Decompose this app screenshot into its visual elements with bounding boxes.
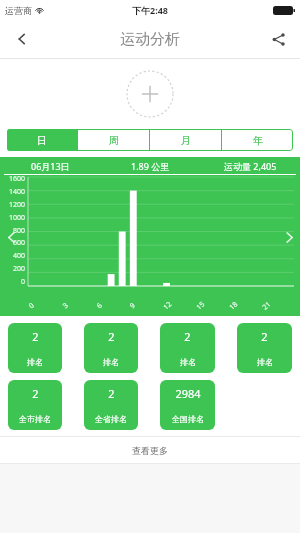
staticText: 日 <box>37 134 47 147</box>
button[interactable]: 2 <box>8 380 62 430</box>
staticText: 400 <box>13 251 26 261</box>
staticText: 全省排名 <box>95 414 127 424</box>
button[interactable]: 日 <box>7 129 77 151</box>
button[interactable]: Previous day <box>0 220 22 254</box>
button[interactable]: 2 <box>84 323 138 373</box>
staticText: 全国排名 <box>172 414 204 424</box>
staticText: 1200 <box>9 200 26 210</box>
staticText: 1.89 公里 <box>131 160 170 172</box>
staticText: 排名 <box>27 357 43 367</box>
button[interactable]: 周 <box>78 129 149 151</box>
staticText: 查看更多 <box>132 445 168 456</box>
staticText: 月 <box>181 134 191 147</box>
staticText: 06月13日 <box>31 160 70 172</box>
staticText: 2 <box>184 329 191 344</box>
button[interactable]: 月 <box>150 129 221 151</box>
button[interactable]: Next day <box>278 220 300 254</box>
button[interactable]: 查看更多 <box>0 437 300 463</box>
staticText: 年 <box>253 134 263 147</box>
button[interactable]: 2 <box>84 380 138 430</box>
button[interactable]: 2 <box>237 323 292 373</box>
button[interactable]: Add <box>126 70 174 118</box>
staticText: 全市排名 <box>19 414 51 424</box>
staticText: 3 <box>61 300 71 311</box>
button[interactable]: 年 <box>222 129 293 151</box>
staticText: 2984 <box>175 386 201 401</box>
staticText: 600 <box>13 238 26 248</box>
staticText: 周 <box>109 134 119 147</box>
staticText: 运动量 2,405 <box>224 160 277 172</box>
staticText: 1000 <box>9 213 26 223</box>
staticText: 2 <box>108 329 115 344</box>
staticText: 排名 <box>180 357 196 367</box>
staticText: 2 <box>32 329 39 344</box>
staticText: 18 <box>227 299 241 312</box>
staticText: 0 <box>21 277 26 287</box>
staticText: 21 <box>260 299 274 312</box>
staticText: 2 <box>261 329 268 344</box>
staticText: 15 <box>194 299 208 312</box>
staticText: 9 <box>128 300 138 311</box>
staticText: 12 <box>161 299 175 312</box>
staticText: 排名 <box>103 357 119 367</box>
staticText: 2 <box>108 386 115 401</box>
button[interactable]: Share <box>256 20 300 58</box>
staticText: 下午2:48 <box>132 4 168 16</box>
staticText: 运动分析 <box>120 30 180 49</box>
staticText: 1600 <box>9 174 26 184</box>
button[interactable]: 2 <box>8 323 62 373</box>
staticText: 6 <box>95 300 105 311</box>
staticText: 800 <box>13 226 26 236</box>
staticText: 200 <box>13 264 26 274</box>
staticText: 0 <box>27 300 37 311</box>
button[interactable]: 2984 <box>160 380 215 430</box>
staticText: 运营商 <box>5 5 32 16</box>
staticText: 1400 <box>9 187 26 197</box>
staticText: 2 <box>32 386 39 401</box>
button[interactable]: 2 <box>160 323 215 373</box>
button[interactable]: Back <box>0 20 44 58</box>
staticText: 排名 <box>257 357 273 367</box>
